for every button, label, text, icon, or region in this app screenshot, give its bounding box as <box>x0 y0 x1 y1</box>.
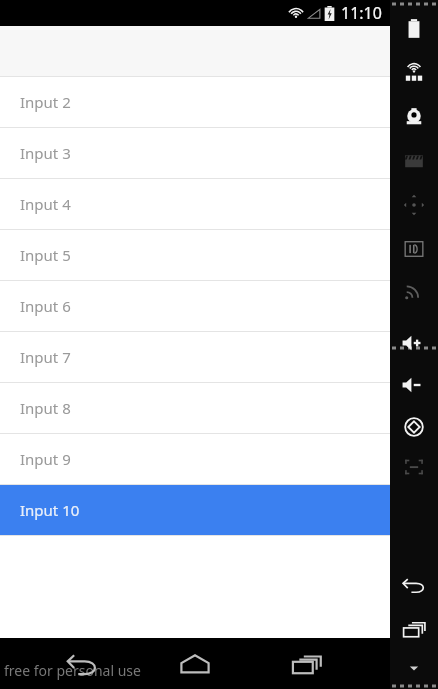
button[interactable]: Zoom <box>394 452 434 482</box>
button[interactable]: Input 6 <box>0 281 390 331</box>
button[interactable]: Input 7 <box>0 332 390 382</box>
button[interactable]: Input 9 <box>0 434 390 484</box>
button[interactable]: Back <box>54 642 112 686</box>
button[interactable]: Input 10 <box>0 485 390 535</box>
staticText: Input 5 <box>20 245 71 265</box>
staticText: Input 10 <box>20 500 80 520</box>
button[interactable]: Input 8 <box>0 383 390 433</box>
button[interactable]: More <box>394 653 434 683</box>
staticText: free for personal use <box>4 661 141 680</box>
button[interactable]: Cellular <box>394 276 434 306</box>
staticText: Input 8 <box>20 398 71 418</box>
button[interactable]: Power <box>394 14 434 44</box>
staticText: Input 3 <box>20 143 71 163</box>
button[interactable]: Input 2 <box>0 77 390 127</box>
staticText: 11:10 <box>341 2 382 24</box>
button[interactable]: Recent apps <box>278 642 336 686</box>
staticText: Input 7 <box>20 347 71 367</box>
button[interactable]: Input 3 <box>0 128 390 178</box>
button[interactable]: Back <box>394 571 434 601</box>
staticText: Input 4 <box>20 194 71 214</box>
staticText: Input 9 <box>20 449 71 469</box>
button[interactable]: Volume up <box>394 328 434 358</box>
staticText: Input 2 <box>20 92 71 112</box>
button[interactable]: Home <box>166 642 224 686</box>
button[interactable]: Virtual sensors <box>394 190 434 220</box>
staticText: Input 6 <box>20 296 71 316</box>
button[interactable]: Overview <box>394 615 434 645</box>
button[interactable]: Device ID <box>394 234 434 264</box>
button[interactable]: Record screen <box>394 146 434 176</box>
button[interactable]: Input 4 <box>0 179 390 229</box>
button[interactable]: Input 5 <box>0 230 390 280</box>
button[interactable]: GPS location <box>394 58 434 88</box>
button[interactable]: Volume down <box>394 370 434 400</box>
button[interactable]: Camera <box>394 102 434 132</box>
button[interactable]: Rotate <box>394 412 434 442</box>
